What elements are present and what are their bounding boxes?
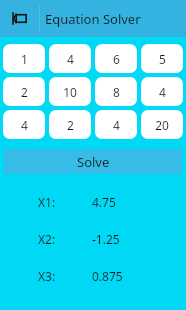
button[interactable]: 20 xyxy=(141,110,183,139)
staticText: 1 xyxy=(21,51,28,67)
staticText: 6 xyxy=(113,51,120,67)
button[interactable]: 1 xyxy=(3,44,45,73)
button[interactable]: 5 xyxy=(141,44,183,73)
staticText: X3: xyxy=(38,268,56,284)
staticText: Equation Solver xyxy=(45,10,141,28)
button[interactable]: 4 xyxy=(95,110,137,139)
staticText: 8 xyxy=(113,84,120,100)
staticText: 5 xyxy=(159,51,166,67)
staticText: -1.25 xyxy=(92,231,120,247)
staticText: 2 xyxy=(67,117,74,133)
staticText: X2: xyxy=(38,231,56,247)
staticText: 4 xyxy=(67,51,74,67)
staticText: 0.875 xyxy=(92,268,123,284)
button[interactable]: 2 xyxy=(3,77,45,106)
staticText: 4 xyxy=(21,117,28,133)
staticText: X1: xyxy=(38,194,56,210)
button[interactable]: 8 xyxy=(95,77,137,106)
button[interactable]: 6 xyxy=(95,44,137,73)
button[interactable]: 4 xyxy=(49,44,91,73)
button[interactable]: 2 xyxy=(49,110,91,139)
button[interactable]: 4 xyxy=(141,77,183,106)
button[interactable]: Navigate up xyxy=(0,0,38,37)
button[interactable]: 4 xyxy=(3,110,45,139)
button[interactable]: 10 xyxy=(49,77,91,106)
staticText: 2 xyxy=(21,84,28,100)
staticText: Solve xyxy=(77,153,110,171)
staticText: 10 xyxy=(63,84,77,100)
staticText: 4 xyxy=(113,117,120,133)
staticText: 4 xyxy=(159,84,166,100)
staticText: 4.75 xyxy=(92,194,116,210)
staticText: 20 xyxy=(155,117,169,133)
button[interactable]: Solve xyxy=(4,149,182,174)
